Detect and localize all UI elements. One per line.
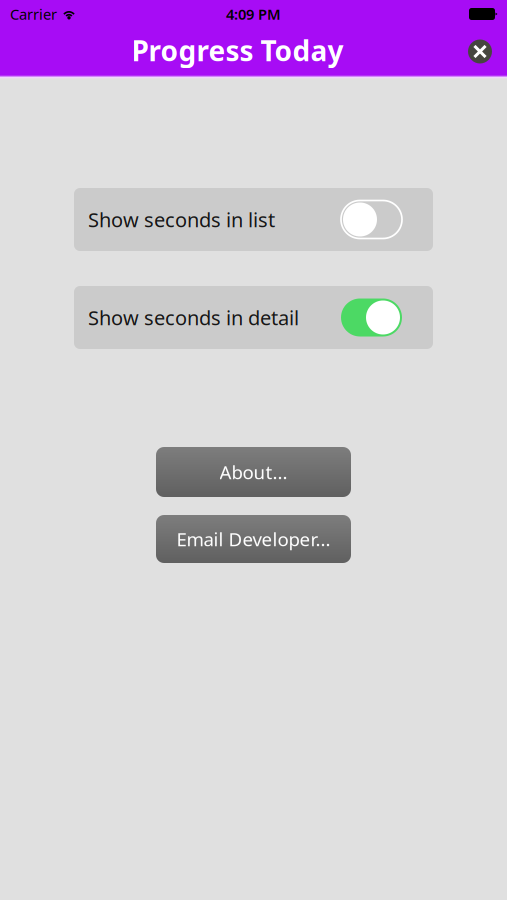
button[interactable]: About... xyxy=(156,447,351,497)
staticText: Carrier xyxy=(10,4,57,24)
staticText: About... xyxy=(219,460,287,484)
button[interactable]: Show seconds in list xyxy=(74,188,433,251)
staticText: Email Developer... xyxy=(176,527,330,551)
staticText: 4:09 PM xyxy=(226,4,281,24)
button[interactable]: Email Developer... xyxy=(156,515,351,563)
button[interactable]: Close xyxy=(463,34,497,68)
staticText: Show seconds in detail xyxy=(88,304,299,331)
staticText: Progress Today xyxy=(131,32,343,69)
staticText: Show seconds in list xyxy=(88,206,275,233)
button[interactable]: Show seconds in detail xyxy=(74,286,433,349)
